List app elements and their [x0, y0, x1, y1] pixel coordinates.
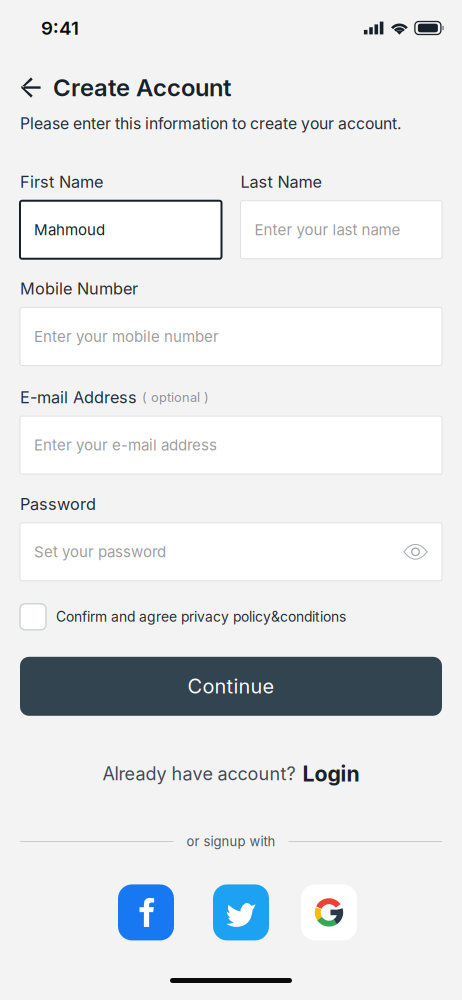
staticText: Enter your mobile number — [34, 327, 219, 345]
button[interactable]: Enter your mobile number — [20, 307, 442, 365]
staticText: Password — [20, 494, 96, 514]
staticText: ( optional ) — [142, 389, 209, 405]
button[interactable]: Sign up with Twitter — [213, 884, 269, 940]
staticText: 9:41 — [41, 17, 79, 39]
button[interactable]: Back — [20, 77, 41, 98]
button[interactable]: Confirm and agree privacy policy&conditi… — [0, 581, 462, 630]
staticText: Login — [302, 761, 359, 787]
button[interactable]: Enter your last name — [240, 201, 442, 259]
staticText: Please enter this information to create … — [20, 114, 402, 133]
button[interactable]: Continue — [0, 630, 462, 716]
button[interactable]: Sign up with Facebook — [118, 884, 174, 940]
staticText: or signup with — [186, 834, 275, 849]
staticText: Mahmoud — [34, 221, 105, 239]
staticText: E-mail Address — [20, 387, 137, 407]
staticText: First Name — [20, 172, 103, 192]
staticText: Confirm and agree privacy policy&conditi… — [56, 608, 346, 625]
staticText: Enter your last name — [254, 221, 400, 239]
button[interactable]: Already have account? — [102, 716, 359, 787]
staticText: Continue — [187, 674, 274, 698]
staticText: Enter your e-mail address — [34, 436, 217, 454]
staticText: Mobile Number — [20, 279, 138, 298]
button[interactable]: Mahmoud — [20, 201, 221, 259]
button[interactable]: Set your password — [20, 523, 442, 581]
staticText: Already have account? — [102, 763, 295, 785]
staticText: Set your password — [34, 543, 166, 561]
button[interactable]: Sign up with Google — [301, 884, 357, 940]
button[interactable]: Enter your e-mail address — [20, 416, 442, 474]
staticText: Last Name — [240, 172, 321, 192]
staticText: Create Account — [53, 73, 231, 102]
